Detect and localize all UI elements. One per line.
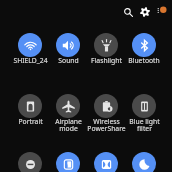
button[interactable]: Settings: [139, 6, 151, 18]
button[interactable]: More options: [155, 5, 169, 19]
button[interactable]: Sound: [49, 33, 87, 73]
button[interactable]: Portrait: [11, 94, 49, 134]
button[interactable]: Airplane mode: [49, 94, 87, 134]
button[interactable]: Blue light filter: [125, 94, 163, 134]
staticText: Airplane mode: [55, 117, 82, 133]
button[interactable]: Quick setting toggle: [125, 152, 163, 172]
button[interactable]: Search: [122, 6, 134, 18]
button[interactable]: Wireless PowerShare: [87, 94, 125, 134]
staticText: Sound: [58, 56, 79, 65]
button[interactable]: SHIELD_24: [11, 33, 49, 73]
button[interactable]: Flashlight: [87, 33, 125, 73]
button[interactable]: Quick setting toggle: [11, 152, 49, 172]
button[interactable]: Quick setting toggle: [49, 152, 87, 172]
staticText: Blue light filter: [129, 117, 160, 133]
staticText: Flashlight: [91, 56, 122, 65]
button[interactable]: Quick setting toggle: [87, 152, 125, 172]
button[interactable]: Bluetooth: [125, 33, 163, 73]
staticText: Portrait: [18, 117, 43, 126]
staticText: SHIELD_24: [13, 56, 48, 65]
staticText: Wireless PowerShare: [87, 117, 125, 133]
staticText: Bluetooth: [128, 56, 160, 65]
